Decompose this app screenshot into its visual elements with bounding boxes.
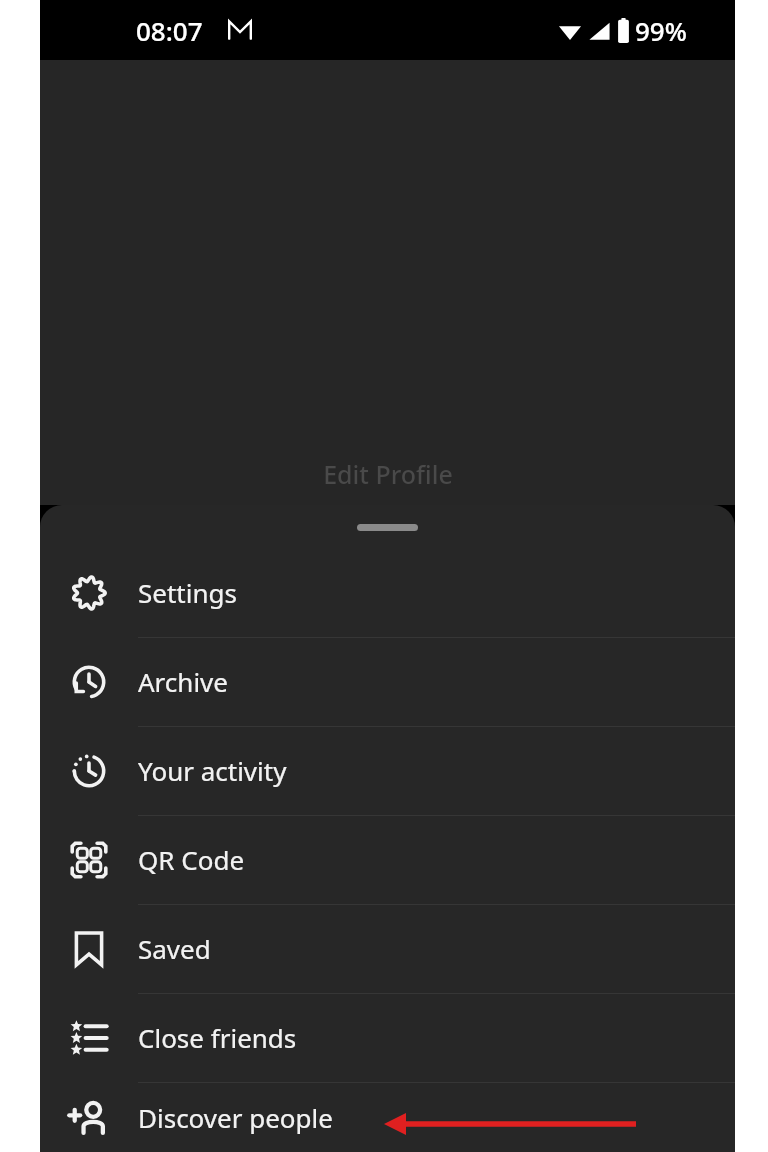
- staticText: Discover people: [138, 1100, 333, 1135]
- button[interactable]: Discover people: [40, 1082, 735, 1152]
- staticText: 08:07: [136, 13, 203, 48]
- staticText: QR Code: [138, 842, 245, 877]
- button[interactable]: Close friends: [40, 993, 735, 1082]
- staticText: Your activity: [138, 753, 287, 788]
- button[interactable]: Your activity: [40, 726, 735, 815]
- button[interactable]: Settings: [40, 548, 735, 637]
- button[interactable]: Saved: [40, 904, 735, 993]
- staticText: Close friends: [138, 1020, 297, 1055]
- staticText: Settings: [138, 575, 237, 610]
- button[interactable]: QR Code: [40, 815, 735, 904]
- staticText: Archive: [138, 664, 228, 699]
- staticText: Edit Profile: [323, 457, 453, 491]
- staticText: Saved: [138, 931, 211, 966]
- staticText: 99%: [635, 13, 687, 48]
- button[interactable]: Archive: [40, 637, 735, 726]
